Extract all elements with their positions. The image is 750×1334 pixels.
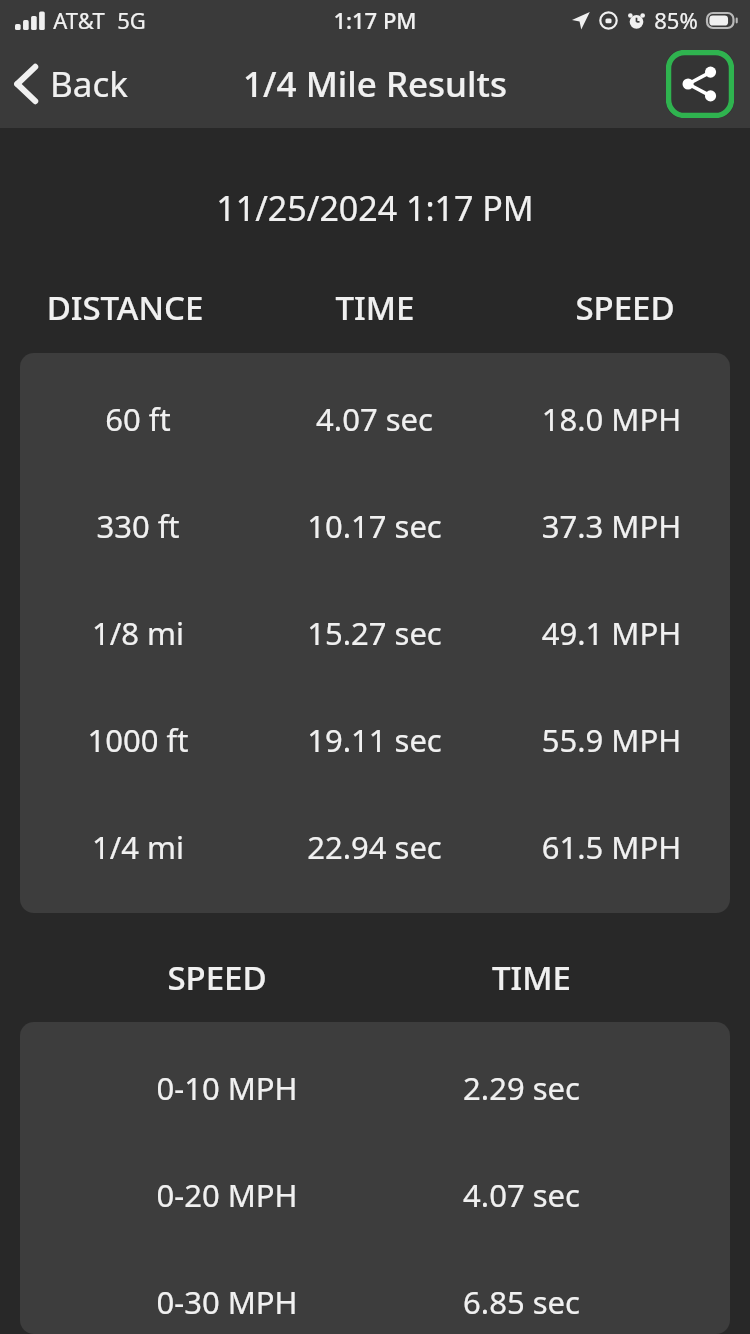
- staticText: SPEED: [167, 955, 267, 1000]
- staticText: 330 ft: [20, 505, 256, 547]
- staticText: 4.07 sec: [256, 398, 493, 440]
- staticText: 6.85 sec: [463, 1281, 580, 1323]
- staticText: 49.1 MPH: [493, 612, 730, 654]
- staticText: 0-20 MPH: [156, 1174, 298, 1216]
- staticText: 4.07 sec: [463, 1174, 580, 1216]
- staticText: TIME: [250, 285, 500, 330]
- staticText: 5G: [117, 5, 146, 35]
- button[interactable]: 0-10 MPH: [20, 1022, 730, 1334]
- staticText: 60 ft: [20, 398, 256, 440]
- staticText: 0-30 MPH: [156, 1281, 298, 1323]
- staticText: 18.0 MPH: [493, 398, 730, 440]
- staticText: SPEED: [500, 285, 750, 330]
- staticText: AT&T: [53, 5, 105, 35]
- staticText: 61.5 MPH: [493, 826, 730, 868]
- staticText: 10.17 sec: [256, 505, 493, 547]
- staticText: 2.29 sec: [463, 1067, 580, 1109]
- staticText: 0-10 MPH: [156, 1067, 298, 1109]
- staticText: 1:17 PM: [333, 5, 417, 35]
- staticText: 1/4 Mile Results: [243, 60, 507, 108]
- staticText: 85%: [654, 5, 698, 35]
- staticText: 22.94 sec: [256, 826, 493, 868]
- staticText: 37.3 MPH: [493, 505, 730, 547]
- staticText: 11/25/2024 1:17 PM: [0, 185, 750, 231]
- staticText: Back: [50, 60, 128, 108]
- staticText: TIME: [492, 955, 571, 1000]
- staticText: 1000 ft: [20, 719, 256, 761]
- button[interactable]: Back: [0, 50, 146, 118]
- staticText: DISTANCE: [0, 285, 250, 330]
- staticText: 19.11 sec: [256, 719, 493, 761]
- staticText: 1/8 mi: [20, 612, 256, 654]
- button[interactable]: Share: [666, 50, 734, 118]
- staticText: 55.9 MPH: [493, 719, 730, 761]
- staticText: 15.27 sec: [256, 612, 493, 654]
- button[interactable]: 60 ft: [20, 353, 730, 913]
- staticText: 1/4 mi: [20, 826, 256, 868]
